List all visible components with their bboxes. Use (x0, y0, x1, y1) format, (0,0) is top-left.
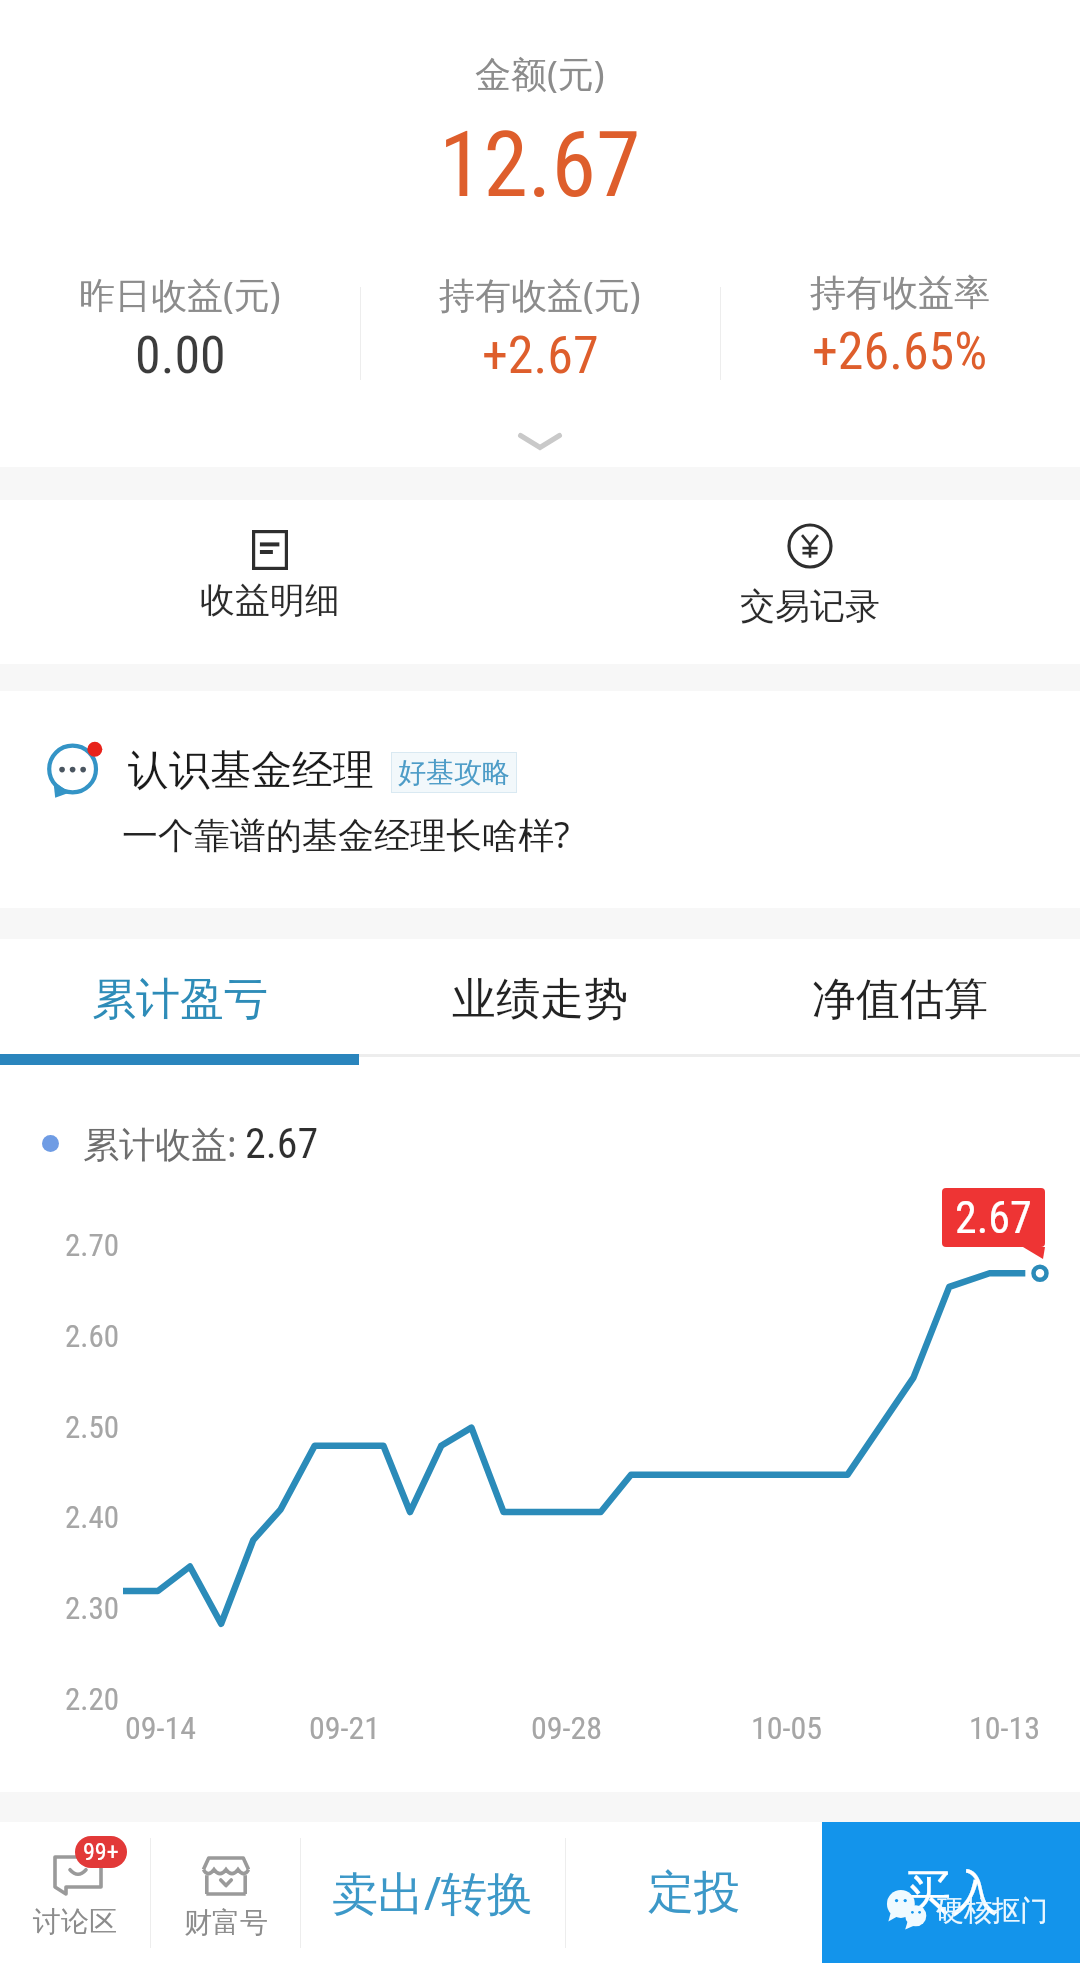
staticText: 累计收益: (83, 1119, 237, 1168)
staticText: 讨论区 (33, 1904, 117, 1939)
staticText: 业绩走势 (452, 972, 628, 1027)
staticText: 认识基金经理 (128, 745, 374, 797)
button[interactable]: 卖出/转换 (301, 1822, 565, 1963)
staticText: 10-13 (969, 1709, 1041, 1747)
staticText: 持有收益率 (810, 270, 990, 315)
staticText: 2.20 (65, 1681, 120, 1717)
staticText: 12.67 (439, 113, 641, 218)
staticText: 2.67 (955, 1192, 1032, 1244)
staticText: 买入 (903, 1863, 999, 1923)
staticText: 持有收益(元) (439, 270, 641, 319)
staticText: 净值估算 (812, 972, 988, 1027)
staticText: 收益明细 (200, 578, 340, 622)
button[interactable]: 收益明细 (0, 500, 540, 664)
staticText: 0.00 (135, 325, 226, 386)
staticText: 好基攻略 (398, 755, 510, 790)
staticText: 2.40 (65, 1499, 120, 1535)
staticText: 09-14 (125, 1709, 197, 1747)
staticText: 卖出/转换 (332, 1861, 534, 1924)
button[interactable]: 买入 (822, 1822, 1080, 1963)
button[interactable]: 累计盈亏 (0, 939, 360, 1074)
staticText: +26.65% (812, 321, 988, 382)
staticText: 2.70 (65, 1227, 120, 1263)
button[interactable]: 财富号 (151, 1822, 300, 1963)
staticText: 09-28 (531, 1709, 603, 1747)
staticText: 金额(元) (475, 49, 605, 98)
staticText: 昨日收益(元) (79, 270, 281, 319)
staticText: 2.50 (65, 1409, 120, 1445)
button[interactable]: 交易记录 (540, 500, 1080, 664)
staticText: 一个靠谱的基金经理长啥样? (122, 810, 570, 859)
staticText: 09-21 (309, 1709, 381, 1747)
staticText: 定投 (648, 1864, 740, 1922)
staticText: 财富号 (184, 1905, 268, 1940)
button[interactable]: Expand (0, 400, 1080, 467)
staticText: 交易记录 (740, 584, 880, 628)
staticText: 2.67 (245, 1119, 319, 1168)
staticText: +2.67 (482, 325, 599, 386)
button[interactable]: 业绩走势 (360, 939, 720, 1074)
button[interactable]: 净值估算 (720, 939, 1080, 1074)
staticText: 2.60 (65, 1318, 120, 1354)
staticText: 2.30 (65, 1590, 120, 1626)
button[interactable]: 认识基金经理 (0, 691, 1080, 908)
staticText: 硬核抠门 (936, 1893, 1048, 1928)
staticText: 99+ (83, 1838, 119, 1866)
staticText: 累计盈亏 (92, 972, 268, 1027)
button[interactable]: 定投 (566, 1822, 822, 1963)
staticText: 10-05 (751, 1709, 823, 1747)
button[interactable]: 99+ (0, 1822, 150, 1963)
